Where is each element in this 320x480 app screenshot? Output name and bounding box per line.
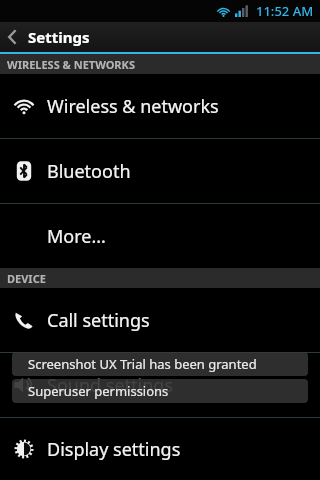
staticText: Bluetooth [47,159,131,184]
staticText: Sound settings [47,373,173,398]
button[interactable]: Bluetooth [0,139,320,203]
button[interactable]: Call settings [0,288,320,352]
staticText: Settings [28,27,90,47]
button[interactable]: Back to Settings [0,22,320,52]
staticText: Wireless & networks [47,94,219,119]
button[interactable]: Display settings [0,418,320,480]
button[interactable]: More... [0,204,320,268]
staticText: Display settings [47,437,181,462]
button[interactable]: Sound settings [0,353,320,417]
button[interactable]: Wireless & networks [0,74,320,138]
staticText: Superuser permissions [28,382,169,400]
staticText: WIRELESS & NETWORKS [7,57,135,72]
staticText: More... [47,224,106,249]
staticText: 11:52 AM [256,2,314,20]
staticText: DEVICE [7,271,46,286]
staticText: Screenshot UX Trial has been granted [28,355,257,373]
staticText: Call settings [47,308,150,333]
